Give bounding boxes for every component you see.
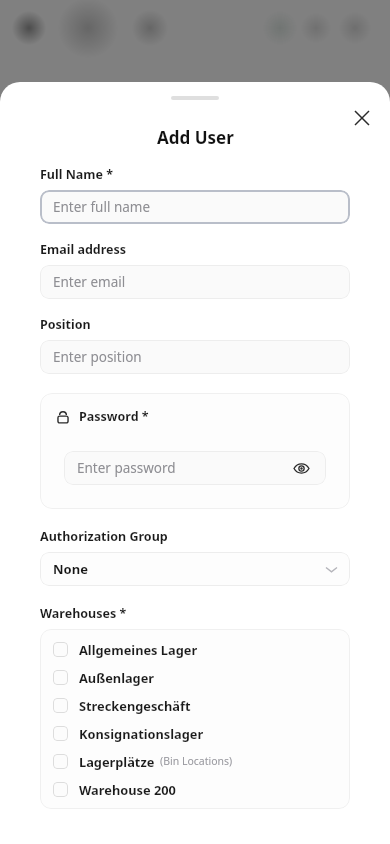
staticText: Email address [40, 241, 127, 258]
button[interactable]: Enter position [40, 340, 350, 374]
staticText: None [53, 560, 88, 578]
button[interactable]: Show password [289, 456, 313, 480]
button[interactable]: Close [346, 102, 378, 134]
staticText: (Bin Locations) [160, 754, 233, 768]
staticText: Authorization Group [40, 528, 168, 545]
button[interactable]: Warehouse 200 [40, 775, 350, 803]
staticText: Allgemeines Lager [79, 641, 198, 658]
button[interactable]: Lagerplätze [40, 747, 350, 775]
button[interactable]: None [40, 552, 350, 586]
staticText: Full Name * [40, 166, 114, 183]
button[interactable]: Enter email [40, 265, 350, 299]
staticText: Streckengeschäft [79, 697, 191, 714]
button[interactable]: Außenlager [40, 663, 350, 691]
staticText: Add User [157, 126, 234, 149]
button[interactable]: Enter password [64, 451, 326, 485]
staticText: Warehouses * [40, 605, 127, 622]
staticText: Enter full name [53, 198, 151, 216]
staticText: Position [40, 316, 91, 333]
button[interactable]: Allgemeines Lager [40, 635, 350, 663]
button[interactable]: Streckengeschäft [40, 691, 350, 719]
staticText: Konsignationslager [79, 725, 204, 742]
staticText: Außenlager [79, 669, 155, 686]
staticText: Lagerplätze [79, 753, 155, 770]
staticText: Warehouse 200 [79, 781, 176, 798]
button[interactable]: Enter full name [40, 190, 350, 224]
staticText: Enter password [77, 459, 176, 477]
button[interactable]: Konsignationslager [40, 719, 350, 747]
staticText: Enter email [53, 273, 126, 291]
staticText: Enter position [53, 348, 142, 366]
staticText: Password * [79, 408, 149, 425]
